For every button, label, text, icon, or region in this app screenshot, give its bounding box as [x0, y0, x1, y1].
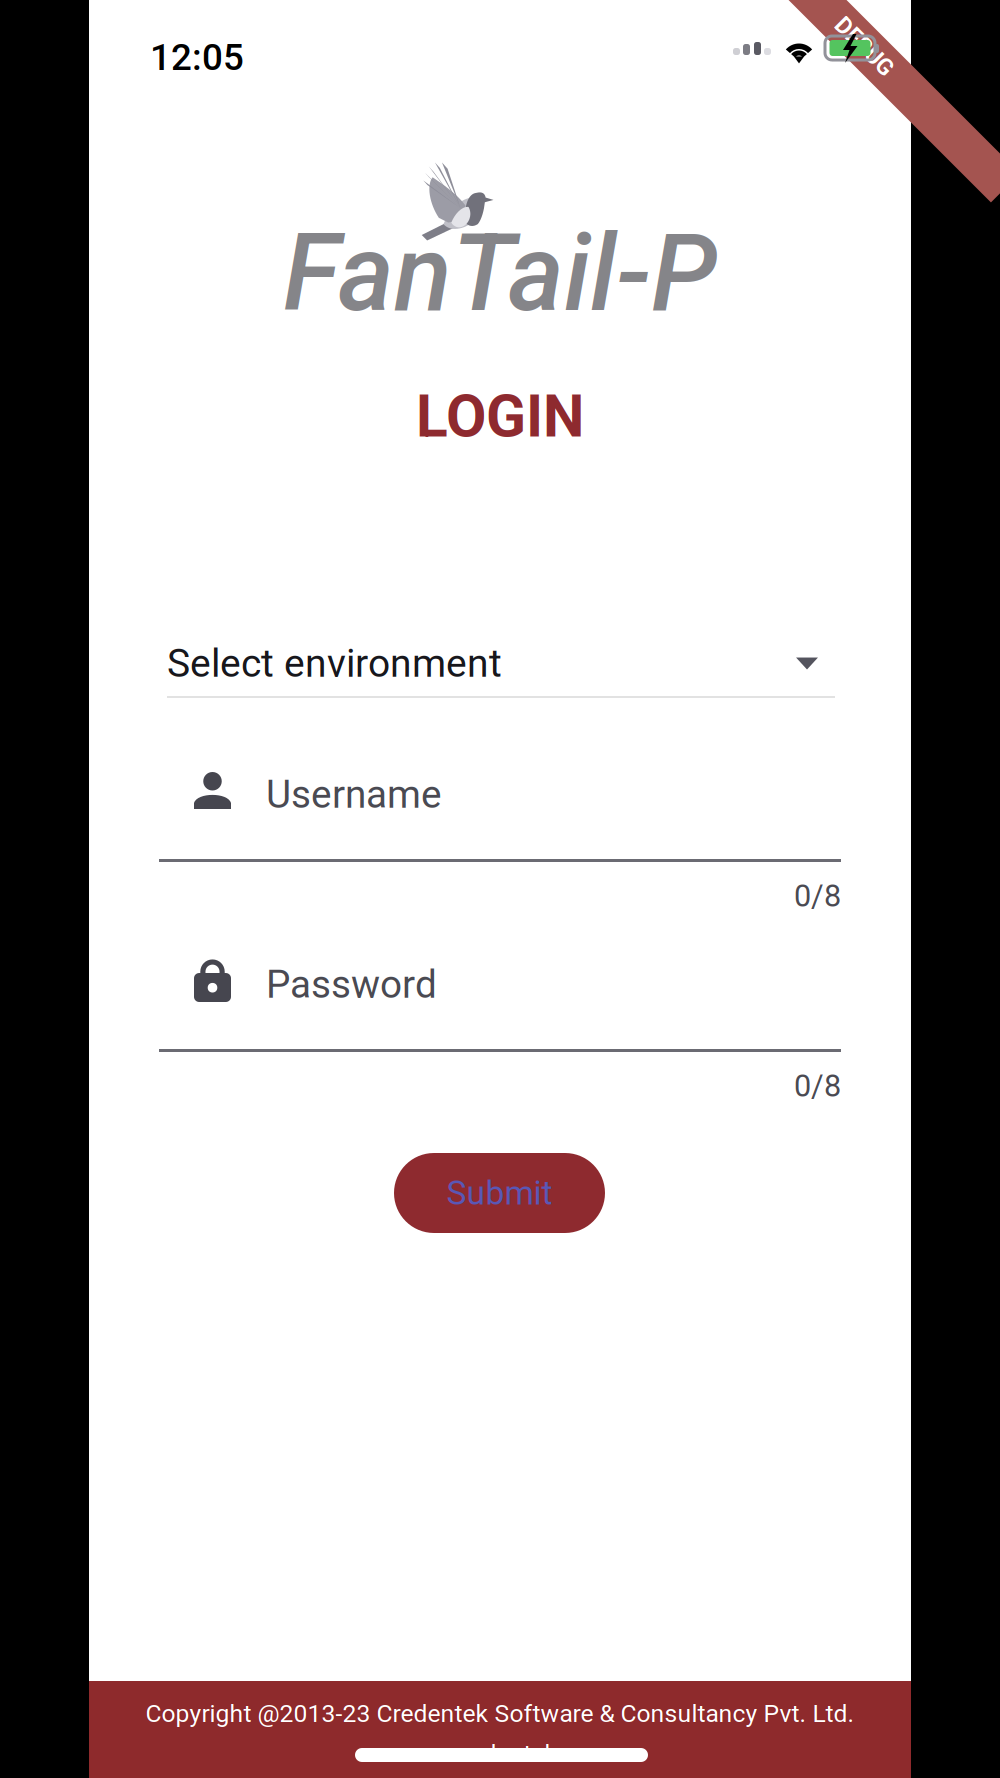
staticText: Submit	[446, 1173, 552, 1213]
staticText: 12:05	[150, 36, 244, 79]
staticText: FanTail-P	[283, 211, 717, 336]
staticText: www.credentek.com	[386, 1739, 613, 1768]
staticText: Copyright @2013-23 Credentek Software & …	[145, 1699, 854, 1728]
staticText: LOGIN	[416, 382, 584, 451]
staticText: Select environment	[167, 641, 502, 686]
button[interactable]: Select environment	[167, 631, 835, 698]
staticText: Password	[266, 962, 437, 1007]
staticText: Username	[266, 772, 442, 817]
staticText: DEBUG	[828, 33, 900, 60]
staticText: 0/8	[794, 878, 841, 914]
staticText: 0/8	[794, 1068, 841, 1104]
button[interactable]: Submit	[394, 1153, 605, 1233]
